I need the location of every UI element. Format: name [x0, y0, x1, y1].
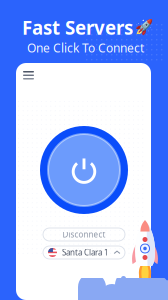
staticText: Fast Servers [22, 15, 133, 40]
button[interactable]: Power [40, 126, 128, 214]
button[interactable]: Menu [19, 67, 38, 83]
staticText: Santa Clara 1 [62, 247, 109, 258]
button[interactable]: Santa Clara 1 [43, 246, 125, 259]
button[interactable]: Disconnect [43, 228, 125, 241]
staticText: 🚀 [135, 19, 153, 36]
staticText: Disconnect [62, 229, 105, 240]
staticText: One Click To Connect [27, 40, 144, 56]
